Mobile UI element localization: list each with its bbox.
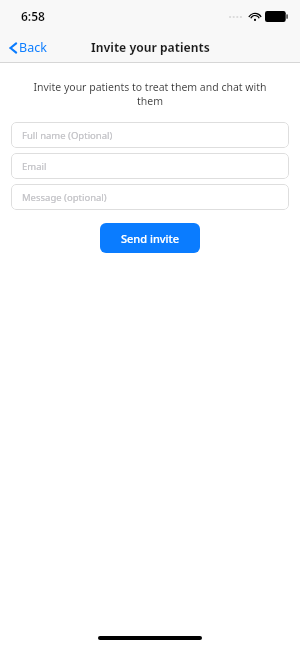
button[interactable]: Back	[0, 35, 57, 60]
staticText: Message (optional)	[22, 191, 107, 204]
button[interactable]: Full name (Optional)	[11, 122, 289, 148]
staticText: Invite your patients to treat them and c…	[30, 80, 270, 108]
staticText: 6:58	[21, 8, 45, 24]
button[interactable]: Send invite	[100, 223, 200, 253]
staticText: Email	[22, 160, 47, 173]
button[interactable]: Email	[11, 153, 289, 179]
staticText: Full name (Optional)	[22, 129, 113, 142]
button[interactable]: Message (optional)	[11, 184, 289, 210]
staticText: Invite your patients	[91, 39, 210, 55]
staticText: Back	[19, 39, 47, 56]
staticText: Send invite	[121, 231, 180, 246]
